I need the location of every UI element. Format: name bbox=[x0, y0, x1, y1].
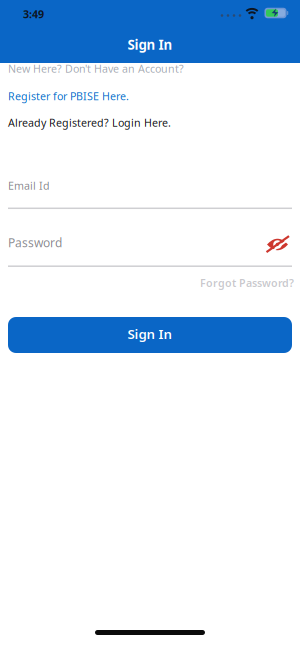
staticText: 3:49 bbox=[23, 7, 44, 21]
staticText: Sign In bbox=[127, 325, 172, 343]
staticText: New Here? Don't Have an Account? bbox=[8, 62, 184, 76]
staticText: Password bbox=[8, 234, 62, 250]
staticText: Forgot Password? bbox=[200, 276, 294, 290]
staticText: Sign In bbox=[127, 36, 172, 53]
staticText: Email Id bbox=[8, 178, 50, 193]
staticText: Already Registered? Login Here. bbox=[8, 115, 171, 130]
staticText: Register for PBISE Here. bbox=[8, 89, 129, 103]
